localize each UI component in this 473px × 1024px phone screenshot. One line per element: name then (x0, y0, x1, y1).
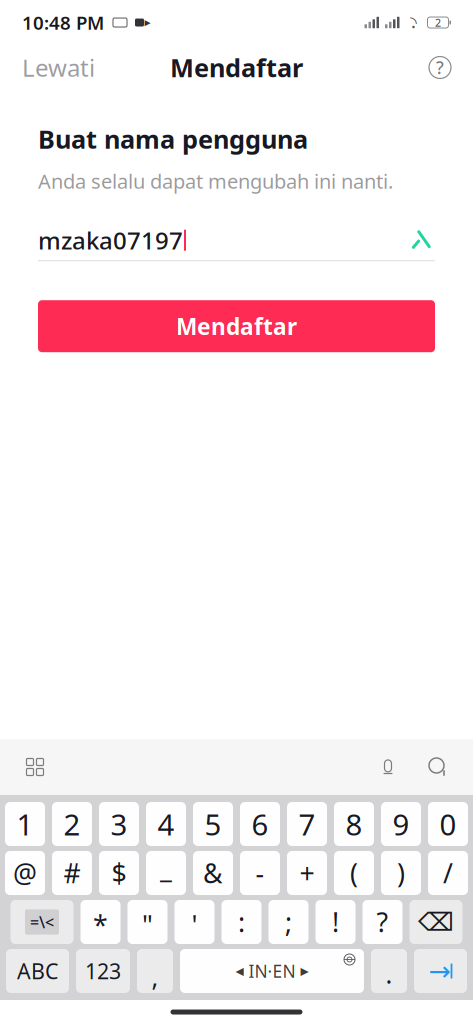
button[interactable]: 6 (240, 802, 280, 846)
button[interactable]: $ (99, 851, 139, 895)
button[interactable]: 1 (5, 802, 45, 846)
staticText: Lewati (22, 52, 95, 83)
button[interactable]: Space (180, 949, 364, 993)
staticText: ? (436, 56, 444, 79)
button[interactable]: / (428, 851, 468, 895)
staticText: " (142, 907, 153, 943)
button[interactable]: : (221, 900, 261, 944)
button[interactable]: ' (174, 900, 214, 944)
staticText: + (299, 855, 314, 891)
button[interactable]: ! (315, 900, 355, 944)
button[interactable]: + (287, 851, 327, 895)
staticText: mzaka07197 (38, 224, 183, 256)
staticText: . (385, 957, 392, 991)
staticText: ◀ (235, 965, 243, 977)
staticText: 6 (251, 804, 268, 843)
staticText: * (93, 907, 108, 943)
button[interactable]: 2 (52, 802, 92, 846)
staticText: , (151, 960, 158, 994)
button[interactable]: 7 (287, 802, 327, 846)
button[interactable]: 3 (99, 802, 139, 846)
staticText: ⌫ (418, 908, 454, 936)
button[interactable]: 123 (76, 949, 130, 993)
button[interactable]: ; (268, 900, 308, 944)
button[interactable]: 4 (146, 802, 186, 846)
staticText: $ (111, 855, 126, 891)
button[interactable]: " (127, 900, 167, 944)
staticText: Anda selalu dapat mengubah ini nanti. (38, 168, 393, 194)
button[interactable]: Mendaftar (38, 300, 435, 352)
staticText: # (63, 855, 80, 891)
staticText: 8 (345, 804, 362, 843)
staticText: Mendaftar (170, 51, 303, 84)
staticText: ABC (17, 957, 58, 985)
staticText: 4 (157, 804, 174, 843)
button[interactable]: Lewati (22, 52, 95, 83)
staticText: ' (191, 907, 197, 943)
staticText: 0 (439, 804, 456, 843)
staticText: / (443, 855, 453, 891)
button[interactable]: ( (334, 851, 374, 895)
staticText: 3 (110, 804, 127, 843)
button[interactable]: * (80, 900, 120, 944)
staticText: : (238, 904, 245, 940)
button[interactable]: , (137, 949, 173, 993)
staticText: ? (376, 904, 388, 940)
button[interactable]: Keyboard options (18, 750, 52, 784)
staticText: 1 (16, 804, 33, 843)
button[interactable]: Delete (409, 900, 462, 944)
staticText: & (203, 855, 223, 891)
staticText: ! (332, 904, 339, 940)
button[interactable]: _ (146, 851, 186, 895)
staticText: Mendaftar (176, 311, 297, 341)
button[interactable]: =\< (10, 900, 73, 944)
button[interactable]: 8 (334, 802, 374, 846)
button[interactable]: . (371, 949, 407, 993)
staticText: ; (285, 904, 292, 940)
staticText: 9 (392, 804, 409, 843)
button[interactable]: 0 (428, 802, 468, 846)
button[interactable]: ? (362, 900, 402, 944)
button[interactable]: Help (429, 56, 451, 78)
staticText: 2 (435, 15, 441, 30)
button[interactable]: - (240, 851, 280, 895)
staticText: =\< (30, 911, 54, 933)
staticText: 10:48 PM (22, 10, 104, 35)
button[interactable]: 5 (193, 802, 233, 846)
staticText: 2 (63, 804, 80, 843)
staticText: ▶ (144, 18, 150, 27)
staticText: ▶ (300, 965, 308, 977)
staticText: @ (13, 855, 37, 891)
staticText: IN·EN (248, 959, 295, 982)
staticText: - (255, 855, 264, 891)
staticText: Buat nama pengguna (38, 122, 308, 156)
staticText: → (429, 956, 451, 986)
button[interactable]: ABC (6, 949, 69, 993)
staticText: 7 (298, 804, 315, 843)
button[interactable]: 9 (381, 802, 421, 846)
staticText: 123 (85, 957, 121, 985)
button[interactable]: ) (381, 851, 421, 895)
staticText: ◝ (410, 13, 417, 32)
button[interactable]: @ (5, 851, 45, 895)
staticText: _ (160, 850, 172, 886)
button[interactable]: Voice input (371, 750, 405, 784)
staticText: 5 (204, 804, 221, 843)
button[interactable]: & (193, 851, 233, 895)
button[interactable]: Search (421, 750, 455, 784)
button[interactable]: # (52, 851, 92, 895)
button[interactable]: Enter (414, 949, 467, 993)
staticText: ( (350, 855, 358, 891)
staticText: ) (397, 855, 405, 891)
